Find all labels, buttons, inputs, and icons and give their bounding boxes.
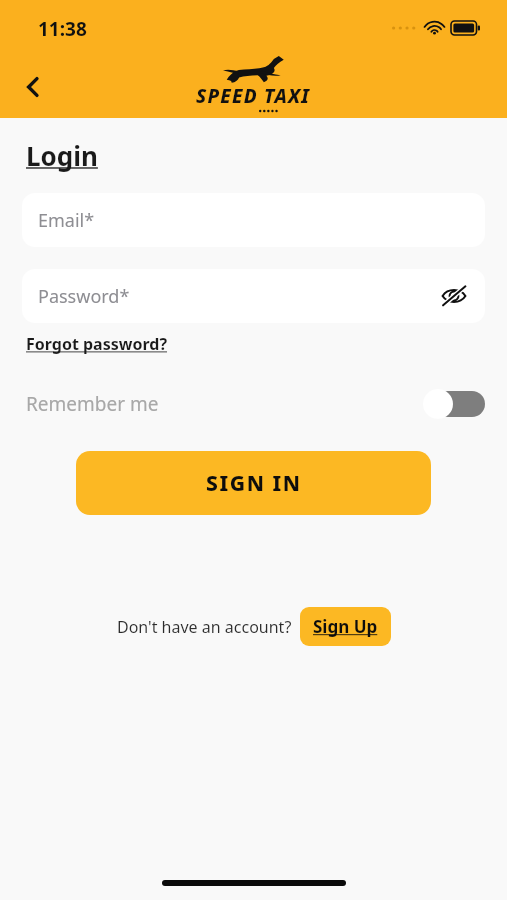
button[interactable]: SIGN IN	[76, 451, 431, 515]
staticText: 11:38	[38, 16, 87, 42]
staticText: Password*	[38, 284, 130, 309]
button[interactable]: Show password	[437, 279, 471, 313]
staticText: SPEED TAXI	[196, 83, 311, 109]
staticText: Login	[26, 138, 98, 173]
button[interactable]: Sign Up	[300, 607, 391, 646]
staticText: Don't have an account?	[117, 616, 292, 638]
button[interactable]: Forgot password?	[22, 331, 168, 357]
button[interactable]: Email*	[22, 193, 485, 247]
staticText: SIGN IN	[206, 469, 302, 498]
button[interactable]: Remember me	[22, 383, 485, 425]
staticText: Email*	[38, 208, 95, 233]
staticText: Remember me	[26, 391, 159, 417]
button[interactable]: Password*	[22, 269, 485, 323]
button[interactable]: Back	[9, 63, 57, 111]
staticText: Sign Up	[313, 615, 378, 638]
staticText: Forgot password?	[26, 333, 168, 355]
